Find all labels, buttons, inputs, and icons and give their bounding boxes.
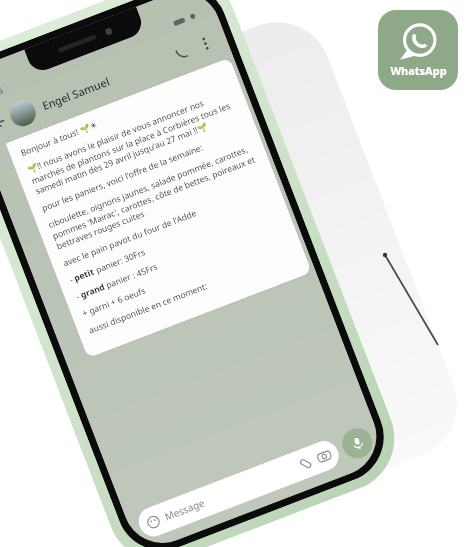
staticText: - bbox=[68, 273, 77, 286]
button[interactable]: Call bbox=[167, 38, 196, 66]
button[interactable]: Record voice message bbox=[338, 424, 377, 463]
staticText: pour les paniers, voici l'offre de la se… bbox=[40, 141, 205, 214]
staticText: aussi disponible en ce moment: bbox=[87, 280, 210, 336]
staticText: WhatsApp bbox=[390, 63, 447, 78]
button[interactable]: WhatsApp bbox=[378, 10, 458, 90]
staticText: Engel Samuel bbox=[40, 74, 112, 113]
staticText: panier: 30Frs bbox=[92, 246, 148, 277]
staticText: Bonjour à tous! 🌱☀️ bbox=[19, 118, 100, 159]
staticText: petit bbox=[72, 265, 96, 284]
staticText: 17:46 bbox=[0, 84, 5, 102]
button[interactable]: Attach bbox=[297, 455, 314, 472]
button[interactable]: Back bbox=[0, 108, 13, 137]
staticText: ciboulette, oignons jaunes, salade pommé… bbox=[47, 141, 264, 252]
staticText: grand bbox=[79, 281, 106, 301]
staticText: avec le pain pavot du four de l'Adde bbox=[61, 207, 198, 269]
button[interactable]: Contact photo bbox=[6, 96, 40, 130]
button[interactable]: More options bbox=[192, 30, 218, 56]
button[interactable]: Bonjour à tous! 🌱☀️ bbox=[5, 57, 312, 358]
button[interactable]: Camera bbox=[316, 448, 333, 465]
staticText: + garni + 6 oeufs bbox=[81, 284, 147, 320]
staticText: 🌱‼ nous avons le plaisir de vous annonce… bbox=[25, 86, 243, 197]
staticText: - bbox=[74, 290, 83, 303]
staticText: Message bbox=[162, 495, 207, 524]
button[interactable]: Message bbox=[134, 437, 343, 541]
staticText: panier : 45Frs bbox=[102, 260, 160, 292]
